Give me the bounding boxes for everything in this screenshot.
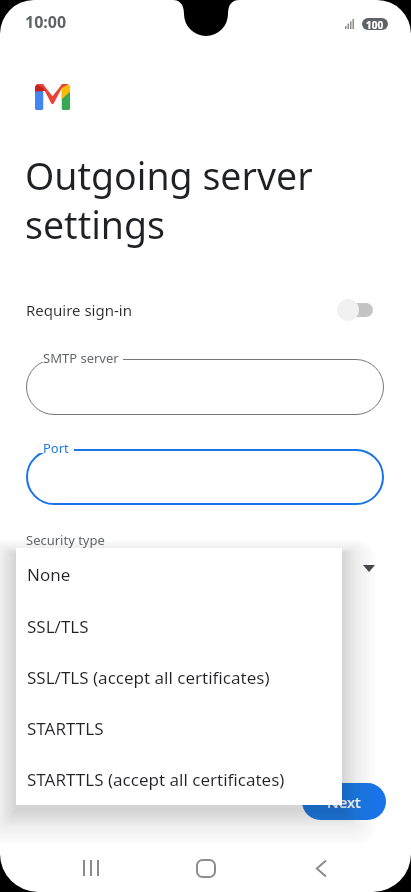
staticText: Outgoing server settings (25, 150, 395, 250)
staticText: SSL/TLS (accept all certificates) (27, 666, 270, 689)
button[interactable]: Expand security type (356, 555, 382, 581)
staticText: 10:00 (25, 11, 67, 33)
button[interactable]: Back (285, 844, 357, 892)
staticText: Security type (26, 531, 105, 549)
staticText: SMTP server (43, 349, 119, 367)
staticText: Next (327, 792, 361, 812)
button[interactable]: Home (169, 844, 242, 892)
button[interactable]: STARTTLS (16, 703, 342, 754)
staticText: Require sign-in (26, 300, 132, 320)
button[interactable]: Require sign-in (0, 286, 411, 334)
staticText: SSL/TLS (27, 615, 89, 638)
staticText: STARTTLS (27, 717, 104, 740)
button[interactable]: STARTTLS (accept all certificates) (16, 754, 342, 805)
button[interactable]: Next (302, 783, 386, 820)
button[interactable]: SSL/TLS (16, 600, 342, 652)
staticText: None (27, 563, 71, 586)
button[interactable]: None (16, 548, 342, 600)
button[interactable]: SSL/TLS (accept all certificates) (16, 652, 342, 703)
button[interactable]: Recents (55, 844, 127, 892)
staticText: STARTTLS (accept all certificates) (27, 768, 285, 791)
staticText: Port (43, 439, 69, 457)
staticText: 100 (366, 18, 384, 30)
